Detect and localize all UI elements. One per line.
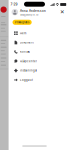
button[interactable]: Stäng meny [59, 8, 66, 15]
staticText: Hjälpcenter [20, 60, 37, 63]
staticText: anna@exempel.se [20, 13, 38, 16]
button[interactable]: Kontakt [9, 47, 69, 56]
staticText: 7:29 [11, 2, 18, 6]
staticText: ✕ [60, 9, 64, 15]
staticText: Logga ut [20, 78, 33, 81]
button[interactable]: Inställningar [9, 66, 69, 75]
staticText: Anna Andersson [20, 9, 46, 13]
button[interactable]: Hem [9, 28, 69, 38]
button[interactable]: Prova gratis [12, 20, 32, 25]
button[interactable]: Hjälpcenter [9, 57, 69, 66]
staticText: Prova gratis [15, 21, 29, 24]
staticText: Dokument [20, 41, 34, 44]
button[interactable]: Dokument [9, 38, 69, 47]
staticText: Inställningar [20, 69, 37, 72]
staticText: Hem [20, 32, 26, 35]
staticText: Kontakt [20, 50, 30, 53]
button[interactable]: Logga ut [9, 75, 69, 85]
